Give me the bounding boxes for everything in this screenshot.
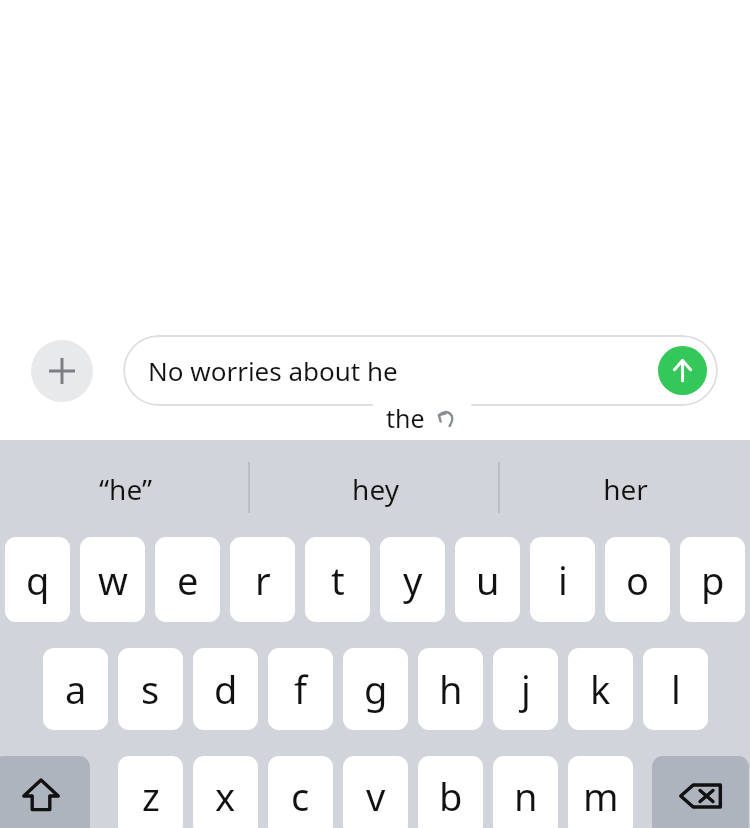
staticText: a [65, 663, 87, 715]
button[interactable]: y [380, 537, 445, 622]
staticText: No worries about he [148, 353, 398, 388]
staticText: l [671, 663, 681, 715]
staticText: h [439, 663, 463, 715]
button[interactable]: w [80, 537, 145, 622]
staticText: j [521, 663, 531, 715]
button[interactable]: i [530, 537, 595, 622]
staticText: g [364, 663, 388, 715]
button[interactable]: Backspace [652, 756, 749, 828]
button[interactable]: v [343, 756, 408, 828]
button[interactable]: r [230, 537, 295, 622]
button[interactable]: t [305, 537, 370, 622]
button[interactable]: l [643, 648, 708, 730]
button[interactable]: c [268, 756, 333, 828]
button[interactable]: g [343, 648, 408, 730]
staticText: i [558, 554, 568, 606]
button[interactable]: n [493, 756, 558, 828]
staticText: “he” [99, 470, 152, 508]
staticText: her [603, 470, 648, 508]
button[interactable]: k [568, 648, 633, 730]
staticText: s [141, 663, 160, 715]
staticText: the [386, 401, 425, 435]
button[interactable]: Add attachment [31, 340, 93, 402]
button[interactable]: z [118, 756, 183, 828]
staticText: k [590, 663, 611, 715]
button[interactable]: d [193, 648, 258, 730]
button[interactable]: u [455, 537, 520, 622]
staticText: f [294, 663, 308, 715]
button[interactable]: Shift [0, 756, 90, 828]
button[interactable]: her [500, 440, 750, 537]
staticText: o [626, 554, 649, 606]
button[interactable]: h [418, 648, 483, 730]
staticText: b [439, 770, 463, 822]
staticText: d [214, 663, 238, 715]
staticText: c [291, 770, 310, 822]
staticText: n [514, 770, 538, 822]
button[interactable]: q [5, 537, 70, 622]
staticText: y [403, 554, 423, 606]
button[interactable]: the [372, 396, 472, 440]
button[interactable]: “he” [0, 440, 250, 537]
button[interactable]: x [193, 756, 258, 828]
staticText: t [331, 554, 345, 606]
button[interactable]: b [418, 756, 483, 828]
button[interactable]: j [493, 648, 558, 730]
staticText: w [98, 554, 128, 606]
staticText: e [177, 554, 199, 606]
button[interactable]: hey [250, 440, 500, 537]
staticText: u [476, 554, 500, 606]
button[interactable]: e [155, 537, 220, 622]
staticText: m [583, 770, 619, 822]
staticText: hey [352, 470, 399, 508]
staticText: v [366, 770, 386, 822]
button[interactable]: a [43, 648, 108, 730]
staticText: q [26, 554, 50, 606]
button[interactable]: Send [658, 346, 707, 395]
staticText: x [215, 770, 236, 822]
button[interactable]: m [568, 756, 633, 828]
button[interactable]: No worries about he [123, 335, 718, 406]
staticText: r [255, 554, 271, 606]
staticText: z [142, 770, 160, 822]
button[interactable]: o [605, 537, 670, 622]
button[interactable]: s [118, 648, 183, 730]
button[interactable]: f [268, 648, 333, 730]
staticText: p [701, 554, 725, 606]
button[interactable]: p [680, 537, 745, 622]
